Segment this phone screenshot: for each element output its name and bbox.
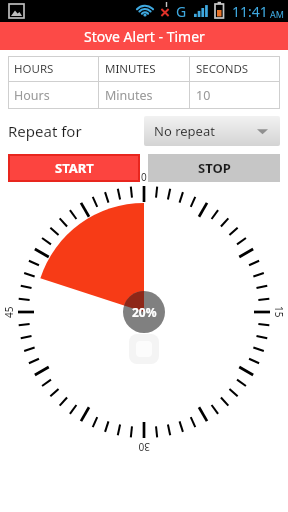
staticText: Minutes [105, 87, 153, 104]
staticText: No repeat [154, 122, 215, 140]
button[interactable]: MINUTES [99, 56, 189, 81]
staticText: G [176, 2, 187, 21]
staticText: START [55, 159, 94, 177]
staticText: Repeat for [8, 121, 82, 141]
staticText: 11:41 [232, 2, 268, 21]
button[interactable]: HOURS [8, 56, 98, 81]
button[interactable]: No repeat [144, 116, 280, 146]
staticText: 30 [138, 440, 150, 454]
button[interactable]: 10 [190, 82, 280, 109]
button[interactable]: START [8, 154, 140, 182]
staticText: SECONDS [196, 61, 249, 77]
button[interactable]: Hours [8, 82, 98, 109]
button[interactable]: SECONDS [190, 56, 280, 81]
staticText: 10 [196, 87, 211, 104]
staticText: Stove Alert - Timer [84, 27, 205, 46]
staticText: 0 [141, 170, 147, 184]
staticText: Hours [14, 87, 50, 104]
button[interactable]: Timer dial, 20 percent [0, 182, 288, 512]
staticText: HOURS [14, 61, 54, 77]
staticText: STOP [198, 159, 231, 177]
button[interactable]: Minutes [99, 82, 189, 109]
staticText: 20% [132, 304, 157, 320]
staticText: 15 [272, 306, 286, 318]
staticText: MINUTES [105, 61, 156, 77]
staticText: AM [270, 8, 284, 20]
button[interactable]: STOP [148, 154, 280, 182]
staticText: 45 [2, 306, 16, 318]
